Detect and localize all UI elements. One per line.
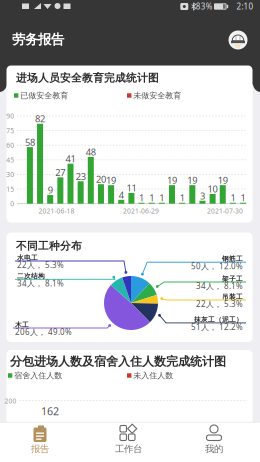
staticText: 82 — [35, 113, 45, 125]
staticText: 报告 — [31, 443, 49, 455]
staticText: 4 — [119, 189, 124, 201]
staticText: 20 — [96, 173, 106, 185]
staticText: 分包进场人数及宿舍入住人数完成统计图 — [10, 354, 226, 369]
staticText: 19 — [106, 174, 116, 186]
staticText: 1 — [149, 191, 154, 204]
staticText: 二次结构 — [17, 272, 45, 280]
button[interactable]: 我的 — [179, 422, 249, 462]
staticText: 1 — [230, 191, 235, 204]
staticText: 162 — [41, 404, 59, 418]
staticText: 83% — [196, 1, 213, 12]
staticText: 30 — [6, 170, 14, 179]
staticText: 11 — [126, 182, 136, 194]
staticText: 90 — [6, 111, 14, 120]
staticText: 3 — [200, 190, 205, 202]
staticText: 我的 — [205, 443, 223, 455]
staticText: 2021-06-18 — [38, 206, 74, 215]
staticText: 0 — [10, 199, 14, 208]
staticText: 1 — [241, 191, 246, 204]
button[interactable]: 工作台 — [93, 422, 163, 462]
button[interactable]: 报告 — [5, 422, 75, 462]
staticText: 水电工 — [17, 254, 38, 262]
staticText: 劳务报告 — [12, 31, 64, 48]
staticText: 1 — [180, 191, 185, 204]
staticText: 34人， 8.1% — [196, 281, 243, 291]
staticText: 不同工种分布 — [16, 239, 82, 252]
staticText: 15 — [6, 185, 14, 193]
staticText: 木工 — [15, 321, 29, 329]
staticText: 宿舍入住人数 — [14, 371, 62, 380]
staticText: 200 — [4, 396, 16, 405]
staticText: 已做安全教育 — [20, 91, 68, 100]
staticText: 58 — [25, 136, 35, 148]
staticText: 2:10 — [236, 1, 253, 12]
staticText: 钢筋工 — [222, 255, 243, 263]
staticText: 60 — [6, 141, 14, 150]
staticText: 41 — [65, 152, 75, 165]
staticText: 75 — [6, 126, 14, 135]
staticText: 19 — [167, 174, 177, 186]
staticText: 架子工 — [222, 275, 243, 283]
staticText: 27 — [55, 166, 65, 179]
staticText: 1 — [159, 191, 164, 204]
staticText: 23 — [76, 170, 86, 182]
staticText: 抹灰工（泥工） — [194, 315, 243, 324]
staticText: 22人， 5.3% — [17, 260, 64, 270]
staticText: 未入住人数 — [133, 371, 173, 380]
staticText: 工作台 — [115, 443, 142, 455]
staticText: 206人， 49.0% — [15, 327, 72, 337]
staticText: 50人， 12.0% — [191, 261, 243, 271]
button[interactable]: 用户 — [225, 27, 251, 53]
staticText: 1 — [139, 191, 144, 204]
staticText: 吊装工 — [222, 293, 243, 301]
staticText: 34人， 8.1% — [17, 278, 64, 289]
staticText: 22人， 5.3% — [196, 299, 243, 309]
staticText: 未做安全教育 — [133, 91, 181, 100]
staticText: 9 — [48, 184, 53, 196]
staticText: 48 — [86, 146, 96, 158]
staticText: 10 — [208, 183, 218, 195]
staticText: 进场人员安全教育完成统计图 — [16, 71, 159, 84]
staticText: 19 — [218, 174, 228, 186]
staticText: 45 — [6, 155, 14, 164]
staticText: 2021-06-29 — [123, 206, 159, 215]
staticText: 51人， 12.2% — [191, 322, 243, 332]
staticText: 19 — [187, 174, 197, 186]
staticText: 2021-07-30 — [207, 206, 243, 215]
